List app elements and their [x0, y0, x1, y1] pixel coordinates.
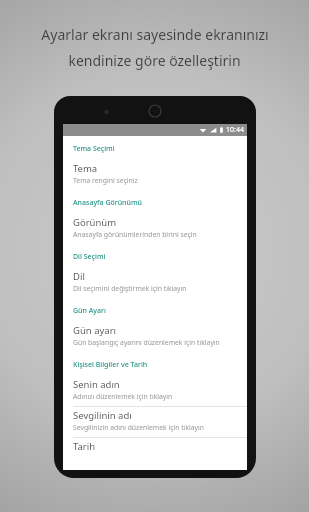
- staticText: Tema rengini seçiniz: [73, 176, 138, 185]
- button[interactable]: Gün ayarı: [63, 322, 247, 352]
- staticText: Gün ayarı: [73, 324, 117, 337]
- staticText: Dil: [73, 270, 85, 283]
- other: Signal: [209, 126, 217, 134]
- staticText: Tema Seçimi: [73, 144, 115, 154]
- other: Battery: [219, 126, 224, 134]
- staticText: Sevgilinizin adını düzenlemek için tıkla…: [73, 423, 205, 432]
- staticText: Ayarlar ekranı sayesinde ekranınızı: [41, 25, 269, 44]
- staticText: Anasayfa görünümlerinden birini seçin: [73, 230, 197, 239]
- button[interactable]: Sevgilinin adı: [63, 407, 247, 437]
- button[interactable]: Senin adın: [63, 376, 247, 406]
- staticText: Tema: [73, 162, 98, 175]
- staticText: Tarih: [73, 440, 96, 453]
- staticText: Gün başlangıç ayarını düzenlemek için tı…: [73, 338, 220, 347]
- button[interactable]: Dil: [63, 268, 247, 298]
- staticText: Gün Ayarı: [73, 306, 106, 316]
- staticText: Dil Seçimi: [73, 252, 106, 262]
- staticText: Dil seçimini değiştirmek için tıklayın: [73, 284, 187, 293]
- staticText: Görünüm: [73, 216, 117, 229]
- staticText: Sevgilinin adı: [73, 409, 132, 422]
- staticText: Adınızı düzenlemek için tıklayın: [73, 392, 173, 401]
- staticText: Senin adın: [73, 378, 120, 391]
- staticText: Kişisel Bilgiler ve Tarih: [73, 360, 148, 370]
- staticText: Anasayfa Görünümü: [73, 198, 142, 208]
- other: Wi-Fi: [199, 126, 207, 134]
- button[interactable]: Tarih: [63, 438, 247, 458]
- staticText: 10:44: [226, 125, 244, 135]
- staticText: kendinize göre özelleştirin: [68, 51, 241, 70]
- button[interactable]: Görünüm: [63, 214, 247, 244]
- button[interactable]: Tema: [63, 160, 247, 190]
